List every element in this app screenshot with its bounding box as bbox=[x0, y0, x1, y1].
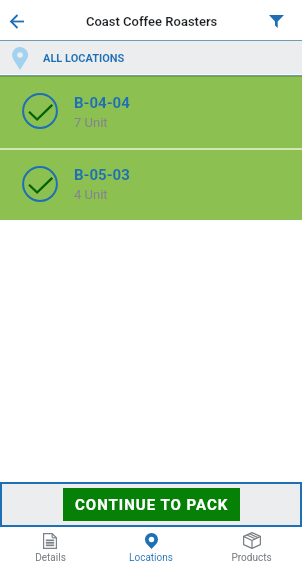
button[interactable]: ALL LOCATIONS bbox=[0, 41, 302, 75]
staticText: 4 Unit bbox=[74, 187, 108, 202]
button[interactable]: Details bbox=[0, 527, 100, 569]
staticText: CONTINUE TO PACK bbox=[75, 496, 229, 514]
button[interactable]: Filter bbox=[260, 5, 292, 37]
button[interactable]: CONTINUE TO PACK bbox=[63, 488, 240, 521]
staticText: B-04-04 bbox=[74, 94, 130, 112]
staticText: Coast Coffee Roasters bbox=[86, 14, 218, 29]
button[interactable]: Locations bbox=[100, 527, 201, 569]
button[interactable]: Back bbox=[1, 5, 33, 37]
staticText: B-05-03 bbox=[74, 166, 130, 184]
staticText: Details bbox=[35, 552, 66, 564]
button[interactable]: B-05-03 bbox=[0, 150, 302, 220]
button[interactable]: B-04-04 bbox=[0, 77, 302, 148]
staticText: Products bbox=[231, 552, 272, 564]
staticText: Locations bbox=[129, 552, 173, 564]
staticText: 7 Unit bbox=[74, 115, 108, 130]
button[interactable]: Products bbox=[201, 527, 302, 569]
staticText: ALL LOCATIONS bbox=[43, 52, 125, 65]
